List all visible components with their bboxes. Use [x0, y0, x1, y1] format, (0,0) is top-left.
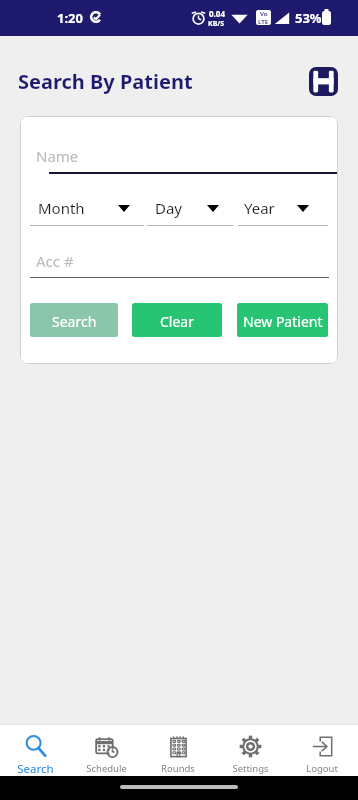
button[interactable]: New Patient: [237, 303, 328, 337]
staticText: Search: [52, 312, 97, 331]
staticText: Rounds: [161, 762, 195, 775]
staticText: Settings: [232, 762, 269, 775]
button[interactable]: Search: [0, 725, 71, 776]
button[interactable]: Logout: [286, 725, 358, 775]
staticText: LTE: [258, 18, 269, 25]
button[interactable]: Search: [30, 303, 118, 337]
button[interactable]: Settings: [214, 725, 286, 775]
button[interactable]: Month: [38, 198, 85, 218]
staticText: Schedule: [86, 762, 127, 775]
staticText: KB/S: [208, 19, 225, 29]
staticText: New Patient: [243, 312, 323, 331]
button[interactable]: Name: [36, 146, 79, 166]
staticText: 53%: [295, 9, 322, 27]
staticText: 1:20: [57, 9, 83, 27]
staticText: Clear: [160, 312, 194, 331]
button[interactable]: Clear: [132, 303, 222, 337]
button[interactable]: Schedule: [71, 725, 142, 775]
staticText: 0.04: [209, 8, 225, 19]
staticText: Vo: [260, 10, 268, 18]
button[interactable]: Hospital: [309, 67, 338, 96]
button[interactable]: Year: [244, 198, 275, 218]
button[interactable]: Day: [155, 198, 183, 218]
button[interactable]: Rounds: [142, 725, 214, 775]
staticText: Logout: [306, 762, 338, 775]
staticText: Search: [17, 761, 54, 776]
staticText: Search By Patient: [18, 68, 193, 95]
button[interactable]: Acc #: [36, 251, 74, 271]
